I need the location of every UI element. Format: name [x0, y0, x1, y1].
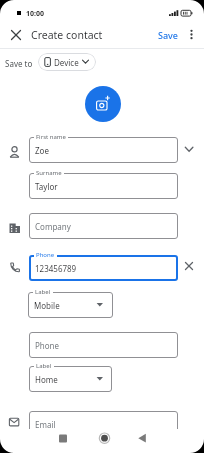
button[interactable]: Home — [29, 366, 112, 392]
button[interactable] — [181, 141, 199, 159]
staticText: Phone — [36, 251, 55, 259]
button[interactable]: Mobile — [28, 292, 113, 318]
staticText: Save — [158, 29, 179, 41]
staticText: Taylor — [35, 181, 58, 192]
button[interactable] — [185, 27, 199, 43]
staticText: Mobile — [34, 300, 60, 311]
button[interactable] — [181, 257, 199, 275]
staticText: 10:00 — [26, 9, 44, 19]
staticText: Home — [35, 374, 58, 385]
staticText: Save to — [5, 58, 33, 69]
button[interactable]: Company — [29, 213, 178, 239]
button[interactable] — [132, 430, 154, 450]
staticText: Zoe — [35, 145, 49, 156]
button[interactable]: Zoe — [29, 137, 178, 163]
button[interactable]: Email — [29, 411, 178, 437]
staticText: Email — [35, 419, 56, 430]
button[interactable]: Save — [152, 27, 184, 43]
staticText: Device — [54, 57, 79, 68]
staticText: 123456789 — [35, 263, 77, 274]
staticText: First name — [36, 133, 66, 141]
staticText: Label — [35, 288, 51, 296]
staticText: Company — [35, 221, 71, 232]
staticText: Create contact — [31, 28, 103, 42]
button[interactable]: Taylor — [29, 173, 178, 199]
button[interactable]: Device — [38, 53, 96, 71]
staticText: Surname — [36, 169, 62, 177]
staticText: Label — [36, 362, 52, 370]
button[interactable] — [52, 430, 74, 450]
button[interactable] — [4, 26, 28, 44]
button[interactable] — [85, 86, 121, 122]
button[interactable] — [94, 430, 116, 450]
button[interactable]: 123456789 — [29, 255, 178, 281]
staticText: Phone — [35, 340, 60, 351]
button[interactable]: Phone — [29, 332, 178, 358]
